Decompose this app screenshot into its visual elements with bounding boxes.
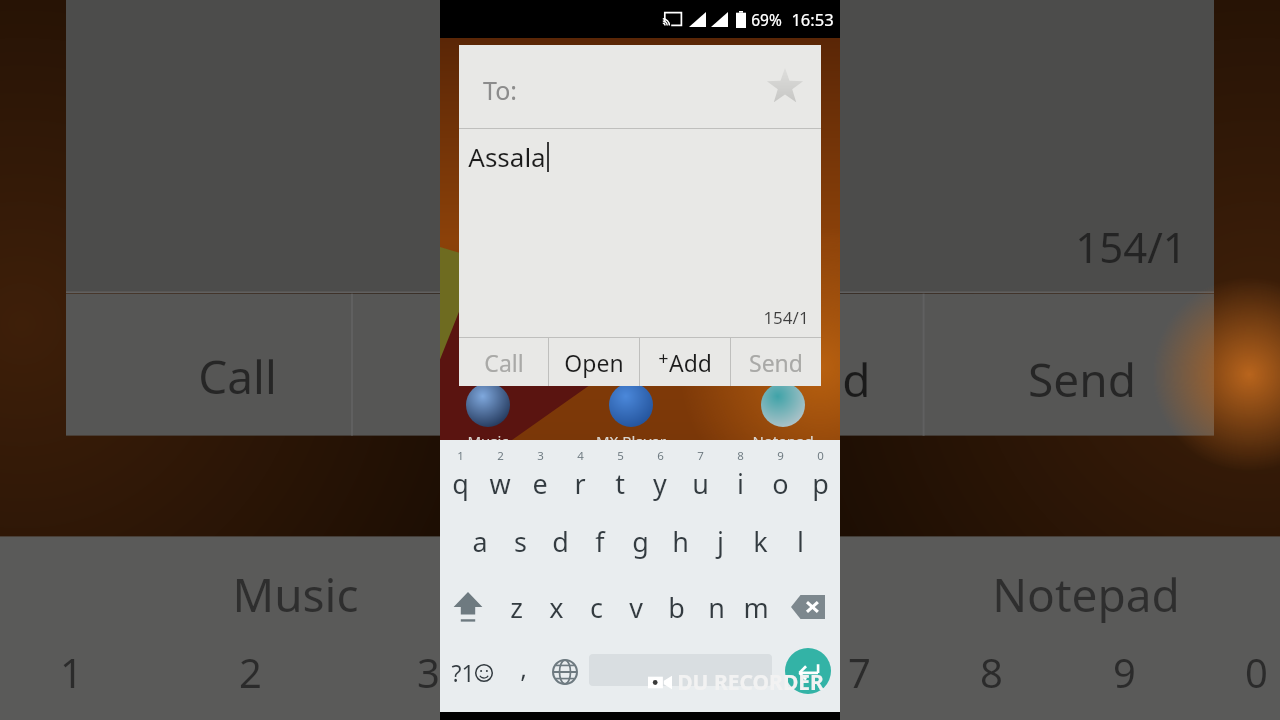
staticText: Music xyxy=(467,431,509,451)
staticText: p xyxy=(812,465,829,502)
button[interactable]: s xyxy=(500,508,540,574)
button[interactable]: 5 xyxy=(600,440,640,508)
staticText: b xyxy=(668,589,685,626)
staticText: Send xyxy=(1028,348,1136,411)
staticText: h xyxy=(672,523,689,560)
button[interactable]: , xyxy=(504,640,543,712)
button[interactable]: m xyxy=(736,574,776,640)
button[interactable]: 7 xyxy=(680,440,720,508)
staticText: 3 xyxy=(417,645,440,699)
staticText: 154/1 xyxy=(1075,218,1187,275)
staticText: 3 xyxy=(537,448,544,464)
button[interactable]: a xyxy=(460,508,500,574)
staticText: u xyxy=(692,465,709,502)
staticText: m xyxy=(743,589,769,626)
staticText: r xyxy=(574,465,586,502)
staticText: 0 xyxy=(1245,645,1268,699)
staticText: 8 xyxy=(980,645,1003,699)
staticText: + xyxy=(658,346,669,371)
button[interactable]: z xyxy=(496,574,536,640)
staticText: k xyxy=(753,523,768,560)
staticText: Call xyxy=(198,345,277,408)
button[interactable]: 9 xyxy=(760,440,800,508)
button[interactable]: 4 xyxy=(560,440,600,508)
staticText: q xyxy=(452,465,469,502)
staticText: 6 xyxy=(657,448,664,464)
button[interactable]: j xyxy=(700,508,740,574)
button[interactable]: Assala xyxy=(459,129,821,337)
staticText: 8 xyxy=(737,448,744,464)
staticText: 1 xyxy=(60,645,83,699)
staticText: y xyxy=(653,465,667,502)
staticText: 2 xyxy=(497,448,504,464)
staticText: MX Player xyxy=(596,431,666,451)
button[interactable]: b xyxy=(656,574,696,640)
button[interactable]: Call xyxy=(459,338,548,386)
staticText: 9 xyxy=(1113,645,1136,699)
button[interactable]: c xyxy=(576,574,616,640)
staticText: 7 xyxy=(848,645,871,699)
button[interactable]: l xyxy=(780,508,820,574)
staticText: Open xyxy=(564,347,624,378)
staticText: , xyxy=(520,651,527,685)
staticText: a xyxy=(472,523,488,560)
staticText: i xyxy=(737,465,744,502)
staticText: c xyxy=(590,589,603,626)
button[interactable]: Open xyxy=(549,338,639,386)
staticText: s xyxy=(514,523,527,560)
staticText: 5 xyxy=(617,448,624,464)
staticText: o xyxy=(772,465,789,502)
staticText: Assala xyxy=(468,139,546,174)
staticText: x xyxy=(549,589,564,626)
button[interactable]: Favourites xyxy=(761,63,809,111)
button[interactable]: To: xyxy=(459,45,821,128)
staticText: w xyxy=(489,465,511,502)
button[interactable]: Change language xyxy=(543,640,586,712)
staticText: 16:53 xyxy=(791,8,834,30)
staticText: DU RECORDER xyxy=(677,668,824,697)
staticText: j xyxy=(717,523,724,560)
staticText: Music xyxy=(232,563,359,626)
button[interactable]: 3 xyxy=(520,440,560,508)
button[interactable]: x xyxy=(536,574,576,640)
button[interactable]: d xyxy=(540,508,580,574)
staticText: ?1 xyxy=(451,657,475,688)
button[interactable]: + xyxy=(640,338,730,386)
button[interactable]: k xyxy=(740,508,780,574)
staticText: g xyxy=(632,523,649,560)
button[interactable]: 8 xyxy=(720,440,760,508)
button[interactable]: 0 xyxy=(800,440,840,508)
staticText: To: xyxy=(483,73,517,107)
button[interactable]: Send xyxy=(731,338,821,386)
staticText: 1 xyxy=(457,448,464,464)
staticText: 7 xyxy=(697,448,704,464)
staticText: l xyxy=(797,523,804,560)
button[interactable]: 6 xyxy=(640,440,680,508)
staticText: Notepad xyxy=(752,431,814,451)
staticText: f xyxy=(595,523,605,560)
staticText: 69% xyxy=(751,9,782,30)
button[interactable]: ?1 xyxy=(440,640,504,712)
staticText: 154/1 xyxy=(763,306,809,329)
button[interactable]: g xyxy=(620,508,660,574)
staticText: Add xyxy=(669,347,712,378)
button[interactable] xyxy=(586,640,775,712)
staticText: t xyxy=(615,465,625,502)
button[interactable]: h xyxy=(660,508,700,574)
button[interactable]: Backspace xyxy=(776,574,840,640)
button[interactable]: 1 xyxy=(440,440,480,508)
staticText: d xyxy=(552,523,569,560)
button[interactable]: v xyxy=(616,574,656,640)
staticText: 9 xyxy=(777,448,784,464)
staticText: 4 xyxy=(577,448,584,464)
button[interactable]: 2 xyxy=(480,440,520,508)
staticText: e xyxy=(532,465,548,502)
button[interactable]: Shift xyxy=(440,574,496,640)
staticText: d xyxy=(842,348,871,411)
staticText: Call xyxy=(484,347,524,378)
button[interactable]: f xyxy=(580,508,620,574)
staticText: 0 xyxy=(817,448,824,464)
staticText: 2 xyxy=(239,645,262,699)
button[interactable]: Enter xyxy=(775,640,840,712)
button[interactable]: n xyxy=(696,574,736,640)
